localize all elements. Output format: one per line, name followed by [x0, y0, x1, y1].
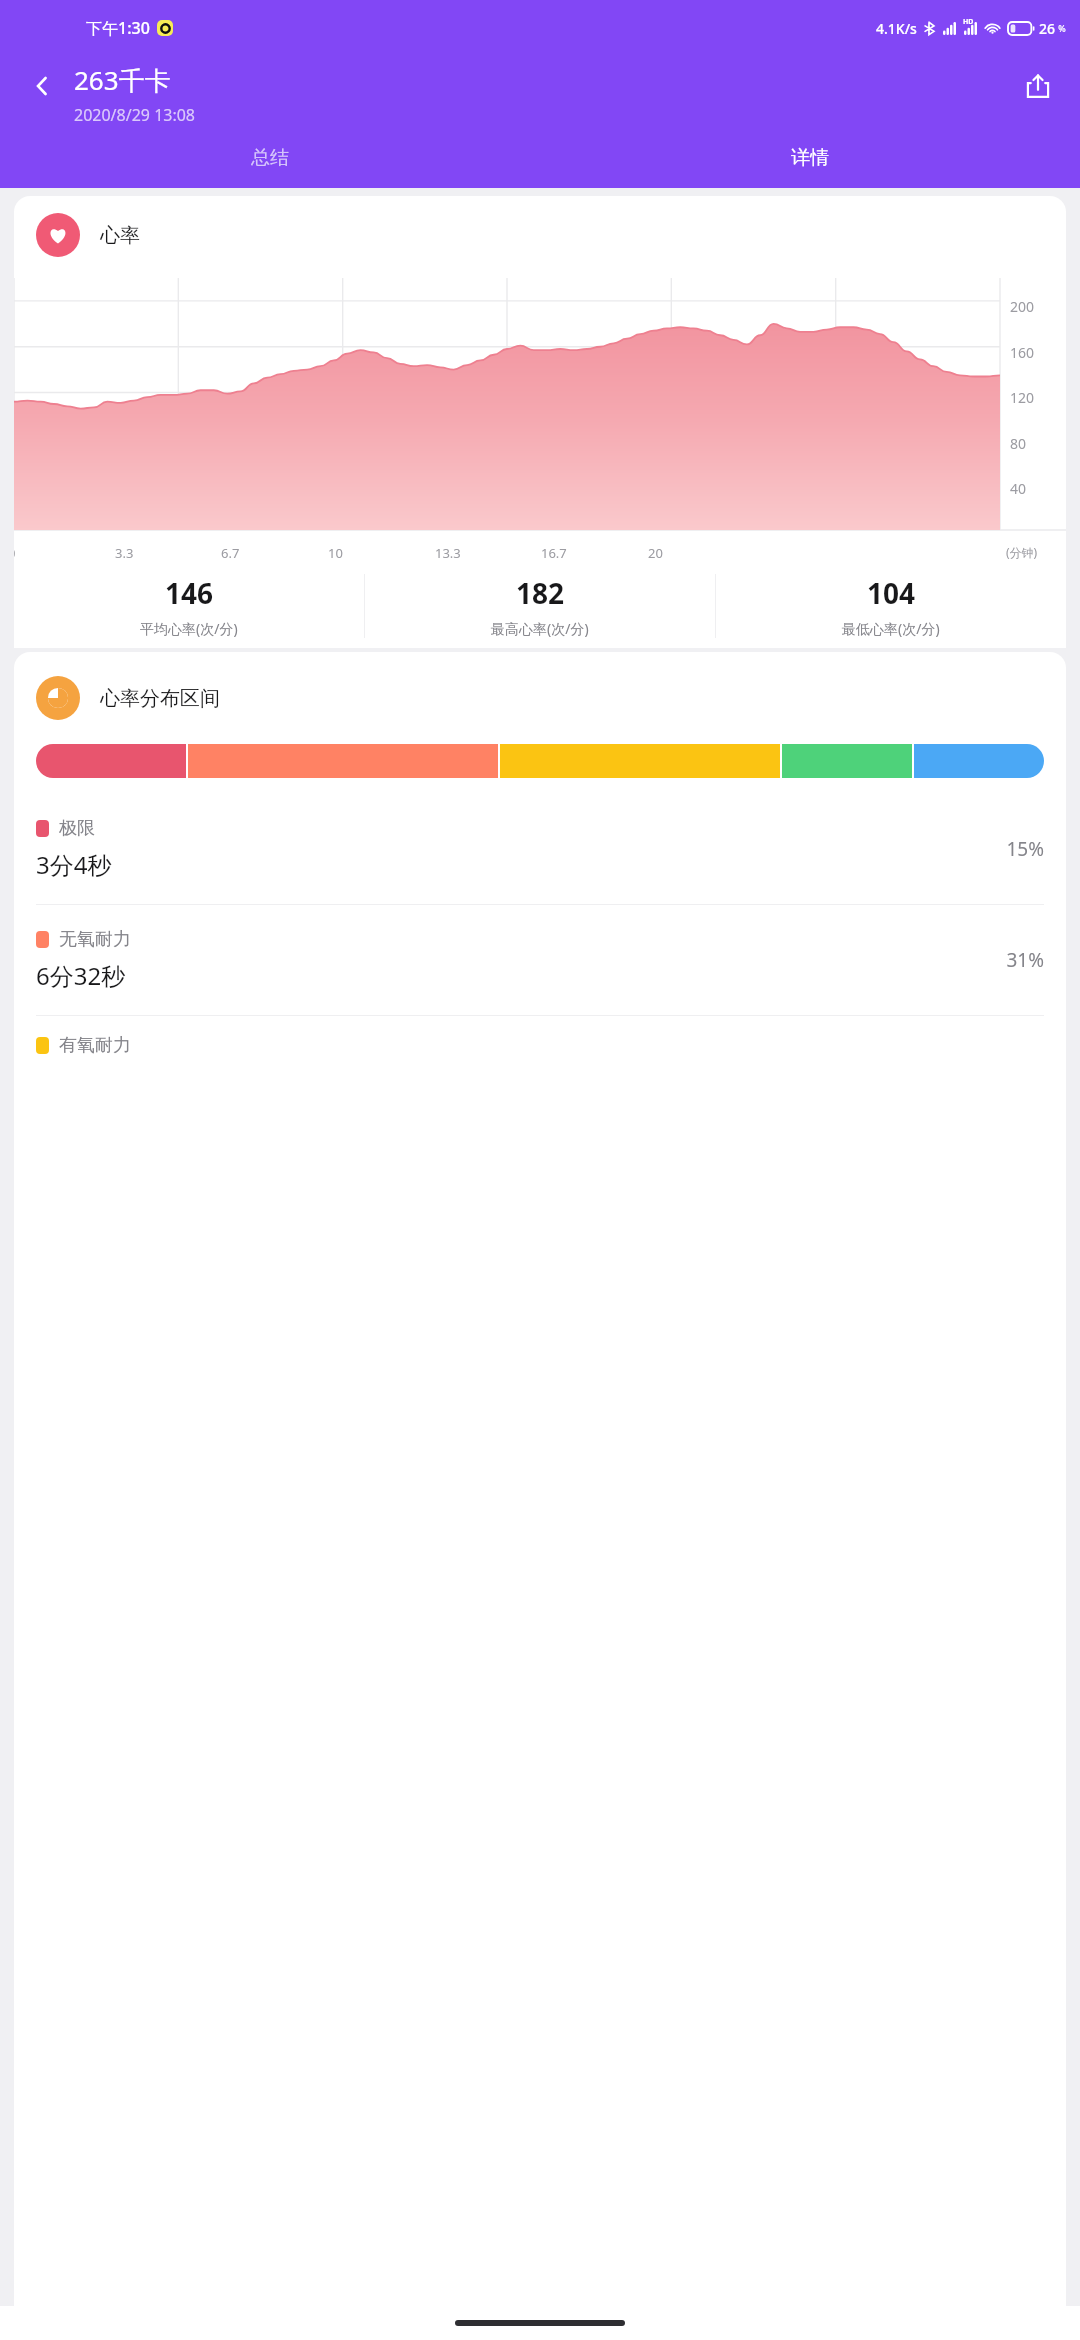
button[interactable]: 心率分布区间 [14, 652, 1066, 744]
staticText: 31% [1006, 947, 1044, 973]
button[interactable]: Share [1014, 62, 1062, 110]
staticText: 13.3 [435, 544, 461, 562]
staticText: 有氧耐力 [59, 1034, 131, 1057]
staticText: 详情 [791, 146, 829, 170]
staticText: 平均心率(次/分) [140, 619, 238, 638]
button[interactable]: 104 [716, 564, 1066, 648]
staticText: 146 [165, 574, 214, 612]
staticText: 总结 [251, 146, 289, 170]
button[interactable]: 146 [14, 564, 364, 648]
staticText: 15% [1006, 836, 1044, 862]
button[interactable]: 无氧耐力 [14, 905, 1066, 1015]
staticText: 4.1K/s [876, 19, 917, 38]
staticText: 极限 [59, 817, 95, 840]
staticText: 0 [14, 544, 16, 562]
button[interactable]: 心率 [14, 196, 1066, 274]
staticText: 最高心率(次/分) [491, 619, 589, 638]
staticText: 6分32秒 [36, 959, 126, 992]
staticText: 3.3 [115, 544, 134, 562]
button[interactable]: Back [18, 62, 66, 110]
staticText: 40 [1010, 479, 1027, 498]
button[interactable]: 详情 [540, 136, 1080, 180]
staticText: 10 [328, 544, 343, 562]
staticText: 160 [1010, 343, 1035, 362]
staticText: 下午1:30 [86, 17, 150, 39]
staticText: HD [963, 17, 974, 27]
staticText: 263千卡 [74, 62, 171, 98]
staticText: 120 [1010, 388, 1035, 407]
staticText: 20 [648, 544, 663, 562]
staticText: 26 [1039, 19, 1056, 38]
staticText: 无氧耐力 [59, 928, 131, 951]
button[interactable] [36, 744, 1044, 778]
button[interactable]: 总结 [0, 136, 540, 180]
staticText: 16.7 [541, 544, 567, 562]
button[interactable]: 182 [365, 564, 715, 648]
staticText: (分钟) [1006, 544, 1066, 560]
staticText: 心率 [100, 223, 140, 248]
button[interactable]: 极限 [14, 794, 1066, 904]
staticText: 80 [1010, 434, 1027, 453]
staticText: 最低心率(次/分) [842, 619, 940, 638]
staticText: 104 [867, 574, 916, 612]
staticText: 心率分布区间 [100, 686, 220, 711]
staticText: 182 [516, 574, 565, 612]
staticText: 2020/8/29 13:08 [74, 104, 196, 126]
staticText: % [1056, 22, 1066, 34]
staticText: 3分4秒 [36, 848, 112, 881]
staticText: 200 [1010, 297, 1035, 316]
staticText: 6.7 [221, 544, 240, 562]
